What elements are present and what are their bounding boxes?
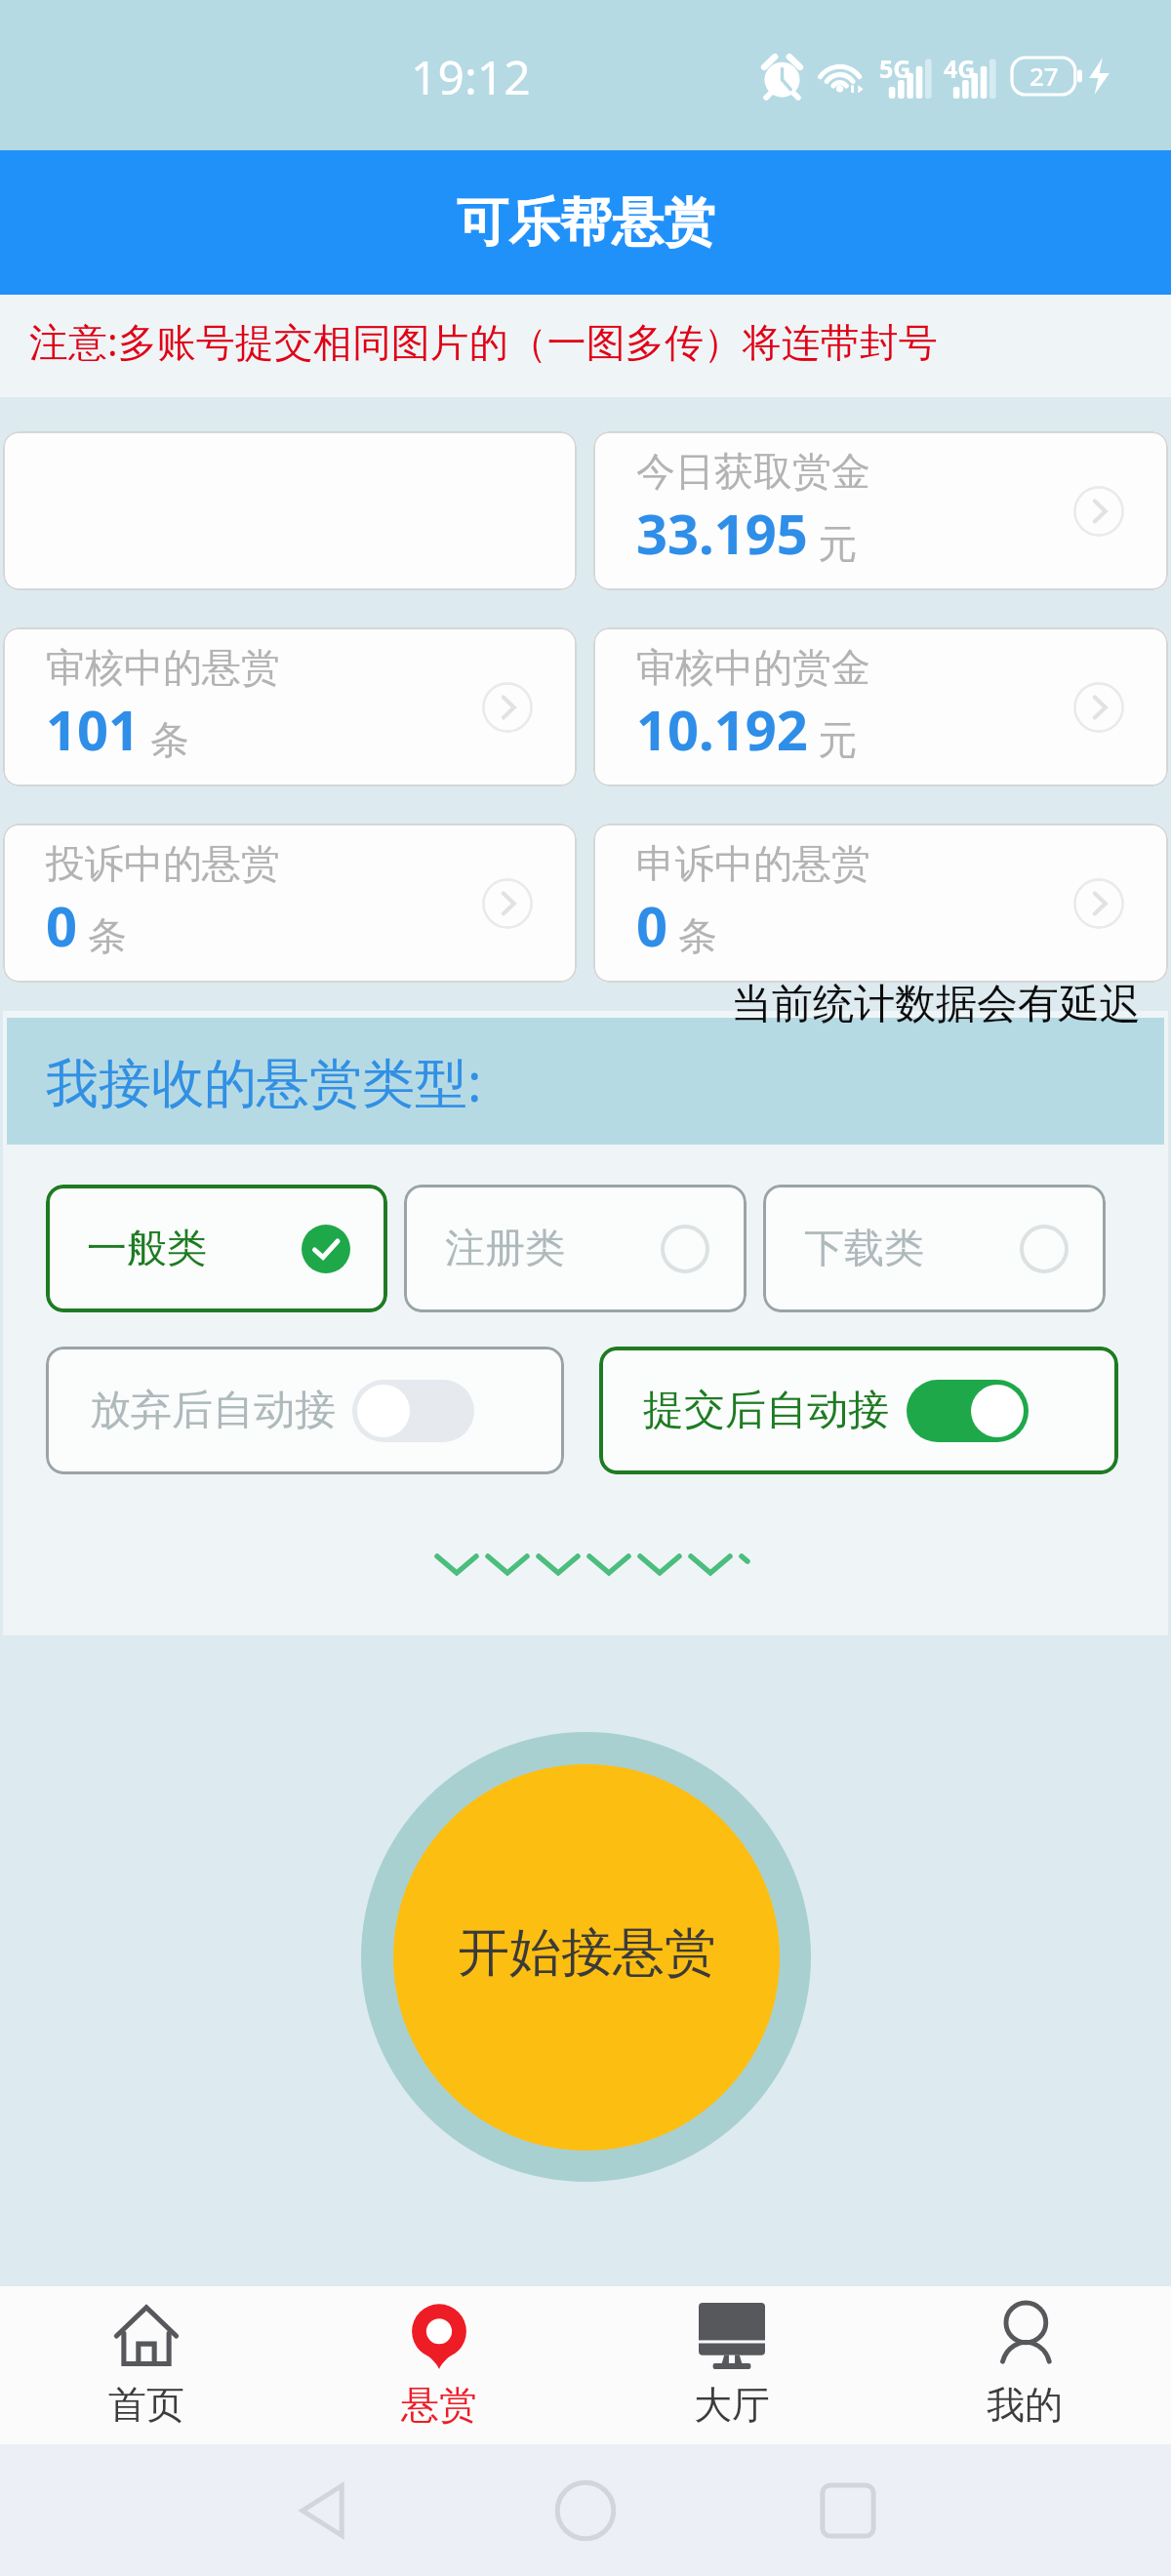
other: 详情: [1073, 682, 1124, 733]
staticText: 提交后自动接: [643, 1385, 889, 1436]
staticText: 0: [636, 888, 668, 962]
button[interactable]: 最近任务: [819, 2481, 877, 2540]
staticText: 审核中的悬赏: [46, 643, 280, 692]
button[interactable]: 大厅: [585, 2286, 878, 2444]
staticText: 投诉中的悬赏: [46, 839, 280, 888]
staticText: 5G: [879, 52, 911, 85]
staticText: 4G: [944, 52, 976, 85]
button[interactable]: 审核中的悬赏: [3, 627, 577, 786]
staticText: 我的: [987, 2381, 1063, 2429]
staticText: 27: [1030, 59, 1059, 93]
staticText: 可乐帮悬赏: [457, 190, 715, 256]
staticText: 注册类: [445, 1224, 565, 1274]
staticText: 条: [88, 911, 127, 960]
button[interactable]: 提交后自动接: [599, 1347, 1118, 1474]
button[interactable]: 今日获取赏金: [593, 431, 1168, 590]
button[interactable]: 悬赏: [293, 2286, 585, 2444]
staticText: 大厅: [694, 2381, 770, 2429]
button[interactable]: 我的: [878, 2286, 1171, 2444]
staticText: 19:12: [411, 45, 531, 108]
staticText: 一般类: [87, 1224, 207, 1274]
staticText: 0: [46, 888, 78, 962]
staticText: 元: [818, 519, 857, 568]
staticText: 条: [678, 911, 717, 960]
button[interactable]: 审核中的赏金: [593, 627, 1168, 786]
button[interactable]: 放弃后自动接: [46, 1347, 564, 1474]
staticText: 我接收的悬赏类型:: [46, 1045, 482, 1117]
staticText: 申诉中的悬赏: [636, 839, 870, 888]
staticText: 审核中的赏金: [636, 643, 870, 692]
staticText: 条: [150, 715, 189, 764]
button[interactable]: 下载类: [763, 1185, 1106, 1312]
button[interactable]: 主页: [556, 2481, 615, 2540]
staticText: 开始接悬赏: [458, 1920, 716, 1986]
staticText: 当前统计数据会有延迟: [731, 979, 1141, 1030]
button[interactable]: 首页: [0, 2286, 293, 2444]
staticText: 10.192: [636, 692, 808, 766]
button[interactable]: 注册类: [404, 1185, 747, 1312]
staticText: 首页: [108, 2381, 184, 2429]
staticText: 注意:多账号提交相同图片的（一图多传）将连带封号: [29, 314, 938, 368]
staticText: 悬赏: [401, 2381, 477, 2429]
button[interactable]: 投诉中的悬赏: [3, 824, 577, 983]
other: 详情: [1073, 878, 1124, 929]
staticText: 元: [818, 715, 857, 764]
staticText: 101: [46, 692, 141, 766]
button[interactable]: 一般类: [46, 1185, 387, 1312]
staticText: 下载类: [804, 1224, 924, 1274]
button[interactable]: 开始接悬赏: [393, 1764, 780, 2151]
staticText: 33.195: [636, 496, 808, 570]
other: 详情: [482, 682, 533, 733]
staticText: 今日获取赏金: [636, 447, 870, 496]
button[interactable]: 申诉中的悬赏: [593, 824, 1168, 983]
button[interactable]: [3, 431, 577, 590]
staticText: 放弃后自动接: [90, 1385, 336, 1436]
other: 详情: [482, 878, 533, 929]
button[interactable]: 返回: [294, 2481, 352, 2540]
other: 详情: [1073, 486, 1124, 537]
